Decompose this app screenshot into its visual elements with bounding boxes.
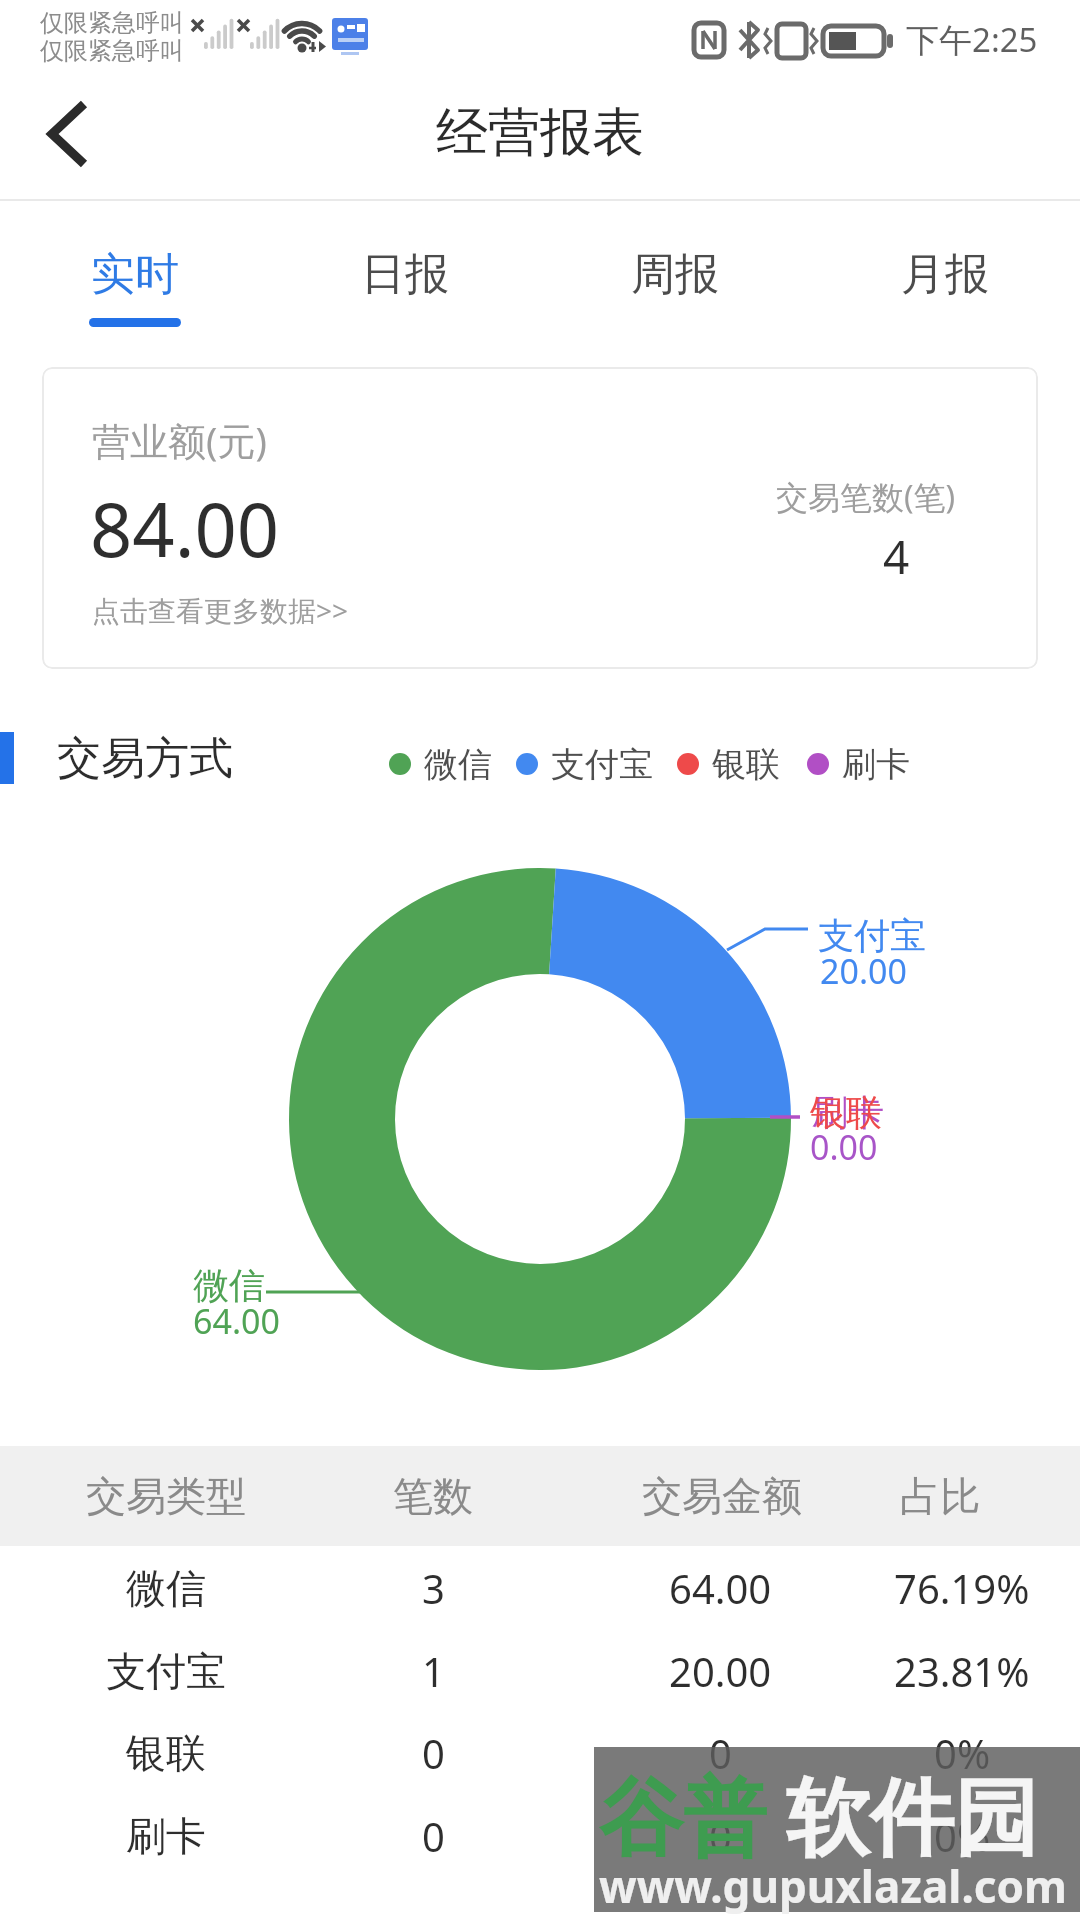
staticText: 支付宝 [106, 1646, 226, 1696]
staticText: 20.00 [820, 948, 907, 994]
staticText: 日报 [361, 247, 449, 302]
staticText: 银联 [810, 1090, 882, 1135]
staticText: 支付宝 [551, 743, 653, 786]
staticText: 64.00 [193, 1298, 280, 1344]
staticText: 0 [422, 1726, 445, 1780]
staticText: 刷卡 [126, 1811, 206, 1861]
staticText: 支付宝 [818, 913, 926, 958]
button[interactable] [0, 1712, 1080, 1794]
staticText: 刷卡 [842, 743, 910, 786]
staticText: 76.19% [894, 1561, 1030, 1615]
button[interactable]: 点击查看更多数据>> [92, 560, 792, 660]
staticText: 64.00 [669, 1561, 772, 1615]
staticText: 下午2:25 [906, 17, 1038, 62]
staticText: 经营报表 [436, 100, 644, 166]
button[interactable]: 实时 [0, 224, 435, 324]
button[interactable] [42, 367, 1038, 669]
staticText: 实时 [91, 247, 179, 302]
button[interactable]: 周报 [375, 224, 975, 324]
staticText: 0% [934, 1809, 991, 1863]
staticText: 银联 [126, 1728, 206, 1778]
staticText: www.gupuxlazal.com [599, 1856, 1067, 1916]
staticText: 微信 [193, 1263, 265, 1308]
staticText: 0 [709, 1809, 732, 1863]
staticText: 刷卡 [812, 1090, 884, 1135]
staticText: 0 [422, 1809, 445, 1863]
staticText: 84.00 [90, 478, 280, 578]
button[interactable] [0, 1630, 1080, 1712]
staticText: 仅限紧急呼叫 [40, 8, 184, 38]
staticText: 1 [422, 1644, 445, 1698]
staticText: 23.81% [894, 1644, 1030, 1698]
staticText: 0% [934, 1726, 991, 1780]
staticText: 交易方式 [57, 731, 233, 786]
staticText: 3 [422, 1561, 445, 1615]
button[interactable] [30, 95, 100, 175]
staticText: 0 [709, 1726, 732, 1780]
staticText: 软件园 [786, 1766, 1038, 1866]
staticText: 笔数 [393, 1471, 473, 1521]
button[interactable] [0, 1795, 1080, 1877]
staticText: 微信 [126, 1563, 206, 1613]
staticText: 微信 [424, 743, 492, 786]
staticText: 占比 [900, 1471, 980, 1521]
staticText: 交易金额 [642, 1471, 802, 1521]
staticText: 银联 [712, 743, 780, 786]
staticText: 点击查看更多数据>> [92, 591, 349, 629]
staticText: 月报 [901, 247, 989, 302]
staticText: 周报 [631, 247, 719, 302]
staticText: 谷普 [599, 1766, 767, 1866]
staticText: 0.00 [810, 1124, 878, 1170]
button[interactable] [0, 1547, 1080, 1629]
staticText: 交易类型 [86, 1471, 246, 1521]
button[interactable]: 月报 [645, 224, 1080, 324]
staticText: 交易笔数(笔) [776, 475, 956, 519]
staticText: 20.00 [669, 1644, 772, 1698]
staticText: 仅限紧急呼叫 [40, 36, 184, 66]
button[interactable]: 日报 [105, 224, 705, 324]
staticText: 营业额(元) [92, 414, 267, 466]
staticText: 4 [883, 525, 910, 588]
